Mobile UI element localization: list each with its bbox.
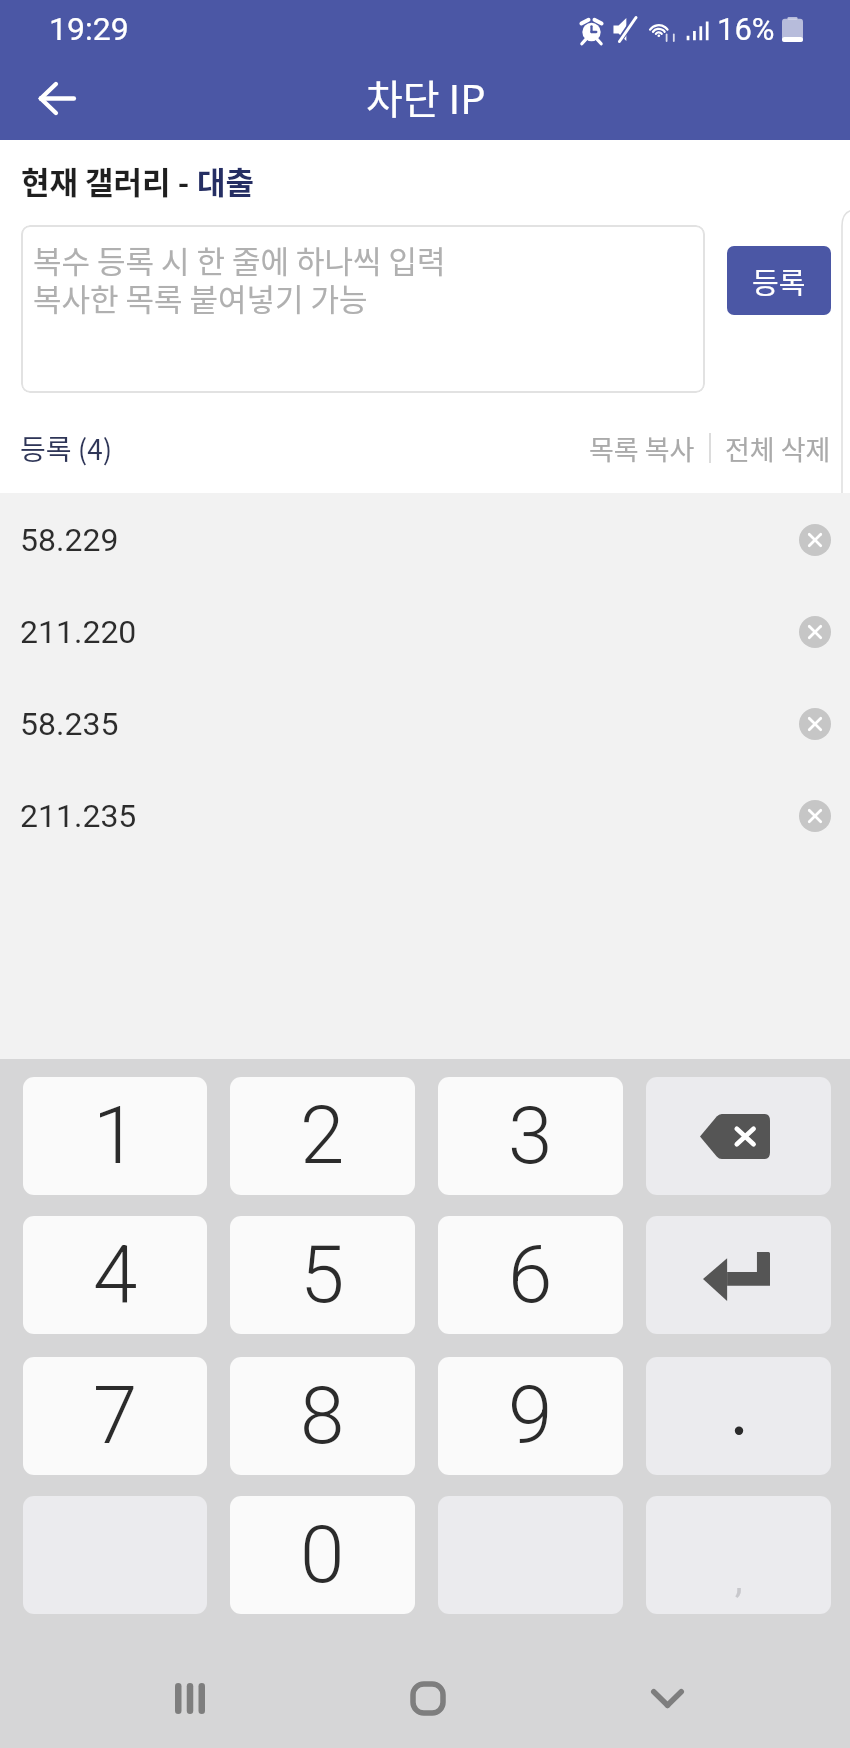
button[interactable]: 목록 복사 bbox=[583, 423, 701, 474]
staticText: 7 bbox=[93, 1369, 138, 1463]
staticText: 16% bbox=[717, 11, 775, 47]
button[interactable]: 0 bbox=[230, 1496, 415, 1614]
staticText: 복수 등록 시 한 줄에 하나씩 입력 bbox=[33, 237, 446, 282]
staticText: 0 bbox=[300, 1508, 345, 1602]
button[interactable]: Backspace bbox=[646, 1077, 831, 1195]
staticText: 58.229 bbox=[20, 521, 119, 559]
staticText: 58.235 bbox=[20, 705, 119, 743]
button[interactable]: 9 bbox=[438, 1357, 623, 1475]
button[interactable]: Enter bbox=[646, 1216, 831, 1334]
button[interactable]: 8 bbox=[230, 1357, 415, 1475]
button[interactable]: 1 bbox=[23, 1077, 207, 1195]
button[interactable]: Hide keyboard bbox=[623, 1654, 711, 1742]
button[interactable]: Remove 58.235 bbox=[790, 699, 840, 749]
staticText: 전체 삭제 bbox=[725, 429, 831, 468]
button[interactable]: Period bbox=[646, 1357, 831, 1475]
staticText: 6 bbox=[508, 1228, 553, 1322]
button[interactable]: 58.235 bbox=[0, 677, 850, 769]
button[interactable]: 58.229 bbox=[0, 493, 850, 585]
button[interactable]: Recents bbox=[146, 1654, 234, 1742]
staticText: 9 bbox=[508, 1369, 553, 1463]
staticText: 등록 bbox=[752, 260, 806, 302]
button[interactable]: 전체 삭제 bbox=[719, 423, 850, 474]
staticText: 211.235 bbox=[20, 797, 137, 835]
staticText: 2 bbox=[300, 1089, 345, 1183]
button[interactable]: 211.220 bbox=[0, 585, 850, 677]
button[interactable]: 3 bbox=[438, 1077, 623, 1195]
staticText: 등록 (4) bbox=[20, 428, 113, 469]
button[interactable]: Remove 211.235 bbox=[790, 791, 840, 841]
button[interactable]: 2 bbox=[230, 1077, 415, 1195]
staticText: 5 bbox=[300, 1228, 345, 1322]
staticText: 목록 복사 bbox=[589, 429, 695, 468]
staticText: 복사한 목록 붙여넣기 가능 bbox=[33, 275, 368, 320]
staticText: 8 bbox=[300, 1369, 345, 1463]
button[interactable]: 등록 (4) bbox=[0, 422, 119, 475]
button[interactable]: 복수 등록 시 한 줄에 하나씩 입력 bbox=[21, 225, 705, 393]
staticText: 차단 IP bbox=[366, 68, 486, 126]
staticText: 1 bbox=[93, 1089, 138, 1183]
button[interactable]: Back bbox=[21, 62, 93, 134]
staticText: 4 bbox=[93, 1228, 138, 1322]
staticText: 211.220 bbox=[20, 613, 137, 651]
staticText: 대출 bbox=[197, 158, 255, 203]
staticText: 19:29 bbox=[49, 10, 129, 48]
staticText: , bbox=[735, 1557, 743, 1602]
button[interactable]: Home bbox=[384, 1654, 472, 1742]
button[interactable]: 7 bbox=[23, 1357, 207, 1475]
button[interactable]: 6 bbox=[438, 1216, 623, 1334]
button[interactable]: 등록 bbox=[727, 246, 831, 315]
button[interactable]: 4 bbox=[23, 1216, 207, 1334]
button[interactable]: Remove 211.220 bbox=[790, 607, 840, 657]
staticText: 3 bbox=[508, 1089, 553, 1183]
button[interactable]: 211.235 bbox=[0, 769, 850, 861]
button[interactable]: 5 bbox=[230, 1216, 415, 1334]
button[interactable]: Remove 58.229 bbox=[790, 515, 840, 565]
staticText: 현재 갤러리 - bbox=[21, 158, 197, 203]
